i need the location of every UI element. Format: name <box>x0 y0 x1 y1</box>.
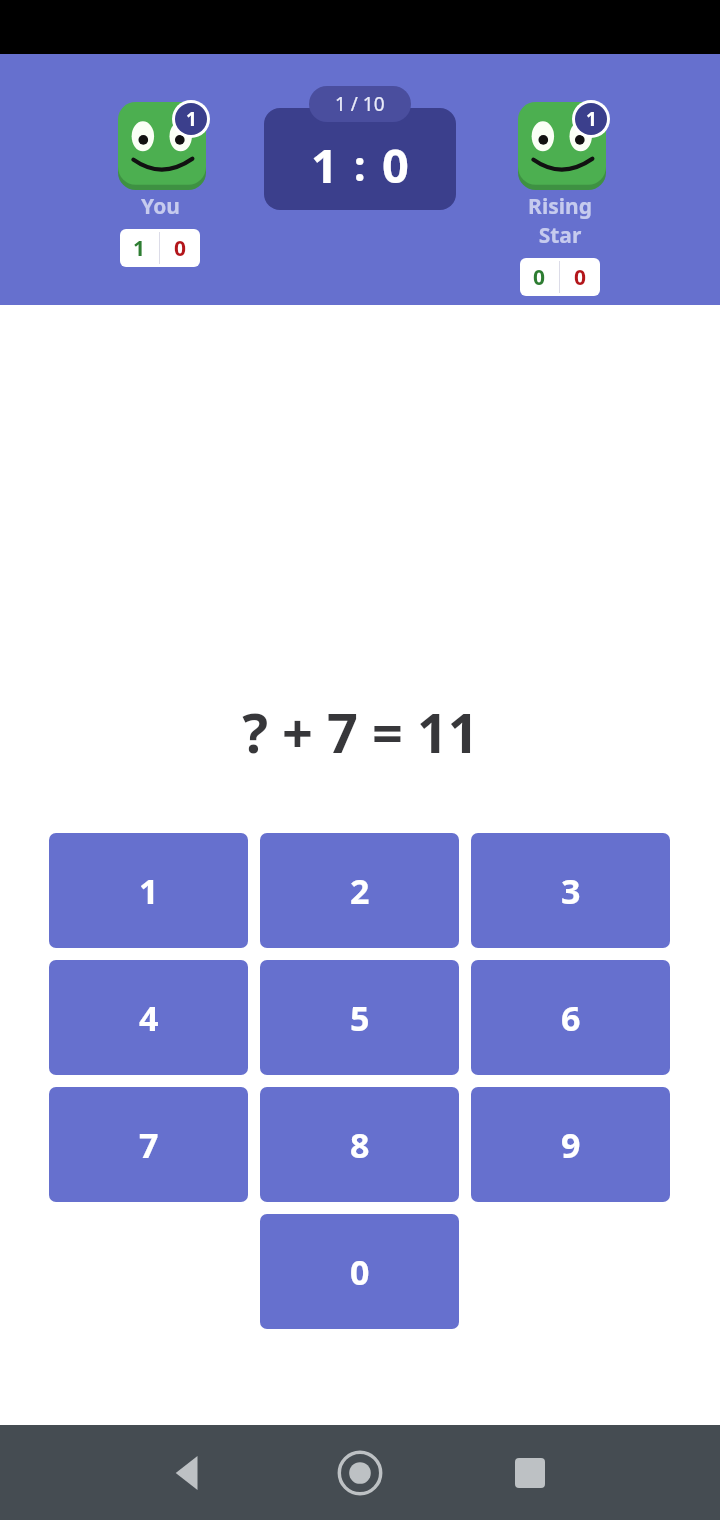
staticText: 3 <box>561 868 581 914</box>
button[interactable]: 9 <box>471 1087 670 1202</box>
button[interactable]: You avatar <box>110 100 210 190</box>
staticText: 1 <box>133 234 146 263</box>
staticText: 1 <box>311 133 338 197</box>
staticText: 2 <box>350 868 370 914</box>
button[interactable]: 6 <box>471 960 670 1075</box>
staticText: ? + 7 = 11 <box>242 695 479 769</box>
button[interactable]: Rising Star avatar <box>510 100 610 190</box>
button[interactable]: 1 <box>120 229 200 267</box>
staticText: 4 <box>139 995 159 1041</box>
button[interactable]: 0 <box>520 258 600 296</box>
staticText: 6 <box>561 995 581 1041</box>
staticText: 0 <box>533 263 546 292</box>
button[interactable]: 7 <box>49 1087 248 1202</box>
button[interactable]: 4 <box>49 960 248 1075</box>
button[interactable]: 0 <box>260 1214 459 1329</box>
staticText: 9 <box>561 1122 581 1168</box>
staticText: 1 <box>586 106 597 132</box>
button[interactable]: Back <box>150 1433 230 1513</box>
button[interactable]: 3 <box>471 833 670 948</box>
staticText: 0 <box>174 234 187 263</box>
button[interactable]: 8 <box>260 1087 459 1202</box>
staticText: 1 <box>139 868 159 914</box>
button[interactable]: Home <box>320 1433 400 1513</box>
button[interactable]: Recent apps <box>490 1433 570 1513</box>
staticText: 0 <box>350 1249 370 1295</box>
staticText: You <box>141 192 180 221</box>
button[interactable]: 2 <box>260 833 459 948</box>
staticText: 7 <box>139 1122 159 1168</box>
button[interactable]: Round score <box>264 86 456 210</box>
staticText: 5 <box>350 995 370 1041</box>
staticText: : <box>354 137 366 193</box>
staticText: 0 <box>382 133 409 197</box>
staticText: 1 <box>186 106 197 132</box>
staticText: 0 <box>574 263 587 292</box>
button[interactable]: 5 <box>260 960 459 1075</box>
staticText: Rising Star <box>510 192 610 250</box>
staticText: 8 <box>350 1122 370 1168</box>
button[interactable]: 1 <box>49 833 248 948</box>
staticText: 1 / 10 <box>335 91 385 117</box>
